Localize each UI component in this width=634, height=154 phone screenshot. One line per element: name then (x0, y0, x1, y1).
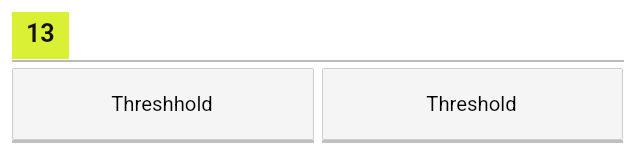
button[interactable]: 13 (12, 12, 69, 59)
staticText: Threshold (322, 92, 622, 116)
button[interactable]: Threshhold (12, 68, 314, 143)
staticText: 13 (26, 19, 55, 48)
button[interactable]: Threshold (322, 68, 623, 143)
staticText: Threshhold (12, 92, 313, 116)
